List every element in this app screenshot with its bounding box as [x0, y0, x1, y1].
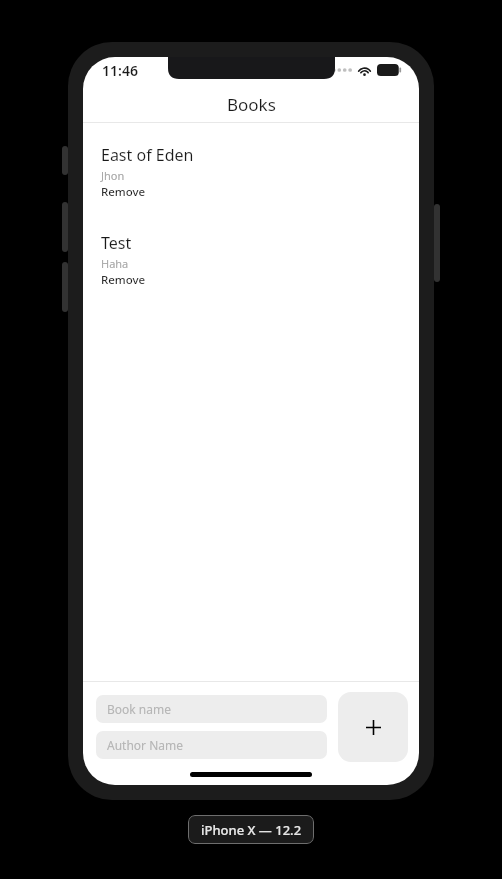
staticText: Books — [227, 93, 276, 116]
staticText: Test — [101, 232, 132, 254]
staticText: Author Name — [107, 737, 184, 753]
staticText: Jhon — [101, 168, 125, 183]
button[interactable]: Author Name — [96, 731, 327, 759]
staticText: Book name — [107, 701, 171, 717]
staticText: 11:46 — [102, 61, 138, 80]
button[interactable]: Remove — [101, 184, 146, 200]
staticText: iPhone X — 12.2 — [201, 821, 302, 839]
button[interactable]: Remove — [101, 272, 146, 288]
staticText: Haha — [101, 256, 129, 271]
staticText: Remove — [101, 272, 146, 288]
button[interactable]: Test — [83, 232, 419, 288]
staticText: East of Eden — [101, 144, 194, 166]
button[interactable]: Add book — [338, 692, 408, 762]
staticText: Remove — [101, 184, 146, 200]
button[interactable]: East of Eden — [83, 144, 419, 200]
button[interactable]: Book name — [96, 695, 327, 723]
